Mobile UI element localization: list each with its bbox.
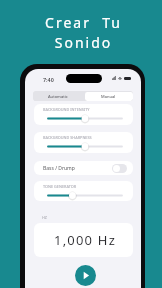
button[interactable]: Play xyxy=(75,265,96,286)
staticText: 1,000 Hz xyxy=(54,231,116,249)
staticText: BACKGROUND SHARPNESS xyxy=(43,135,92,140)
staticText: HZ xyxy=(42,215,48,220)
staticText: Bass / Drump xyxy=(43,165,75,172)
staticText: Crear Tu Sonido xyxy=(45,13,122,53)
staticText: Automatic xyxy=(48,94,68,99)
staticText: TONE GENERATOR xyxy=(43,184,77,189)
staticText: Manual xyxy=(101,94,116,99)
staticText: 7:40 xyxy=(43,76,54,83)
button[interactable]: Manual xyxy=(83,91,133,101)
button[interactable]: Bass / Drump xyxy=(34,161,133,175)
button[interactable]: Automatic xyxy=(33,91,83,101)
staticText: BACKGROUND INTENSITY xyxy=(43,107,90,112)
